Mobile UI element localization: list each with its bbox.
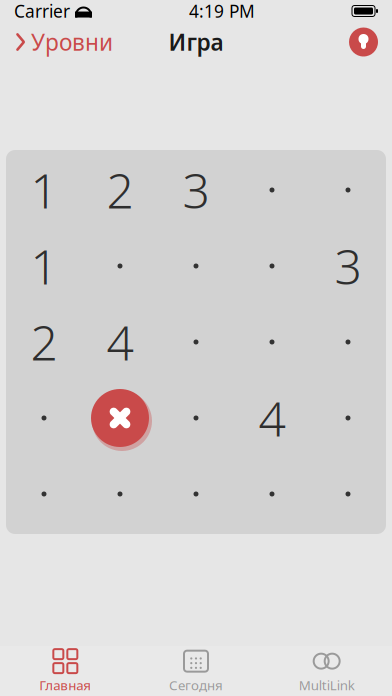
button[interactable]: Hint xyxy=(340,22,387,61)
button[interactable]: 2 xyxy=(82,152,158,228)
button[interactable] xyxy=(234,456,310,532)
button[interactable] xyxy=(234,304,310,380)
staticText: 2 xyxy=(30,310,57,374)
button[interactable]: 2 xyxy=(6,304,82,380)
button[interactable]: Уровни xyxy=(5,21,123,63)
staticText: 3 xyxy=(334,234,361,298)
staticText: Игра xyxy=(168,27,223,57)
staticText: 1 xyxy=(30,234,57,298)
button[interactable]: MultiLink xyxy=(261,644,392,696)
button[interactable] xyxy=(310,380,386,456)
staticText: Сегодня xyxy=(169,676,223,694)
button[interactable]: 4 xyxy=(82,304,158,380)
staticText: Уровни xyxy=(31,27,113,57)
button[interactable]: 1 xyxy=(6,152,82,228)
button[interactable] xyxy=(234,228,310,304)
staticText: 4 xyxy=(106,310,133,374)
staticText: 1 xyxy=(30,158,57,222)
button[interactable]: Главная xyxy=(0,644,131,696)
button[interactable] xyxy=(310,152,386,228)
button[interactable] xyxy=(158,380,234,456)
button[interactable]: Сегодня xyxy=(131,644,261,696)
button[interactable] xyxy=(6,380,82,456)
staticText: MultiLink xyxy=(299,676,355,694)
button[interactable] xyxy=(158,228,234,304)
button[interactable]: 3 xyxy=(158,152,234,228)
button[interactable] xyxy=(158,304,234,380)
staticText: 2 xyxy=(106,158,133,222)
button[interactable] xyxy=(82,380,158,456)
button[interactable] xyxy=(310,304,386,380)
staticText: Главная xyxy=(39,676,91,694)
button[interactable]: 1 xyxy=(6,228,82,304)
staticText: Carrier xyxy=(14,0,70,22)
button[interactable] xyxy=(234,152,310,228)
staticText: 4:19 PM xyxy=(189,0,255,22)
button[interactable] xyxy=(310,456,386,532)
button[interactable] xyxy=(158,456,234,532)
button[interactable]: 4 xyxy=(234,380,310,456)
staticText: 3 xyxy=(182,158,209,222)
button[interactable] xyxy=(6,456,82,532)
staticText: 4 xyxy=(258,386,285,450)
button[interactable] xyxy=(82,228,158,304)
button[interactable]: 3 xyxy=(310,228,386,304)
button[interactable] xyxy=(82,456,158,532)
